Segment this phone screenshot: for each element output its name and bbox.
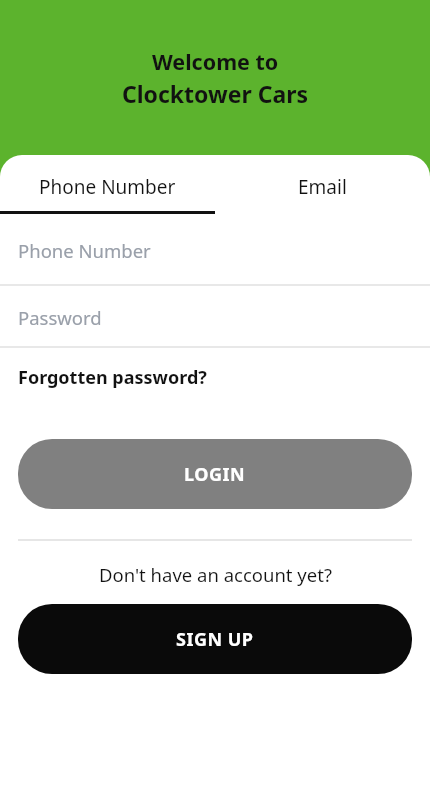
- button[interactable]: Email: [215, 160, 430, 214]
- staticText: LOGIN: [184, 462, 246, 487]
- button[interactable]: LOGIN: [18, 439, 412, 509]
- staticText: Email: [298, 174, 347, 200]
- button[interactable]: Phone Number: [0, 160, 215, 214]
- button[interactable]: SIGN UP: [18, 604, 412, 674]
- staticText: Clocktower Cars: [122, 78, 309, 109]
- staticText: Don't have an account yet?: [99, 562, 332, 587]
- staticText: Welcome to: [152, 47, 279, 76]
- staticText: Phone Number: [39, 174, 176, 200]
- staticText: SIGN UP: [176, 627, 254, 652]
- staticText: Phone Number: [18, 238, 151, 263]
- staticText: Password: [18, 305, 102, 330]
- button[interactable]: Forgotten password?: [18, 365, 207, 390]
